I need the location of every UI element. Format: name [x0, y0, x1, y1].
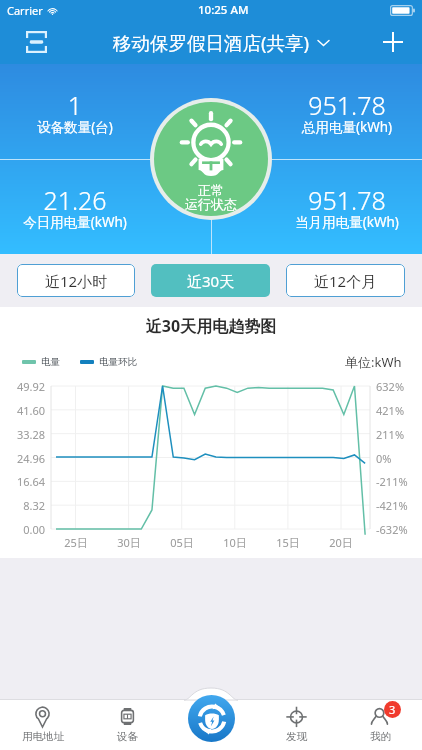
staticText: 30日	[109, 535, 149, 550]
staticText: 近12小时	[45, 271, 108, 291]
staticText: 今日用电量(kWh)	[0, 213, 150, 231]
button[interactable]: 移动保罗假日酒店(共享)	[109, 26, 333, 59]
staticText: 951.78	[272, 183, 422, 217]
staticText: 20日	[321, 535, 361, 550]
staticText: 10:25 AM	[198, 2, 249, 18]
staticText: 当月用电量(kWh)	[272, 213, 422, 231]
staticText: 21.26	[0, 183, 150, 217]
staticText: 49.92	[0, 379, 45, 394]
button[interactable]: Power monitoring	[188, 695, 235, 742]
staticText: 总用电量(kWh)	[272, 118, 422, 136]
button[interactable]: Add	[373, 22, 413, 62]
staticText: 用电地址	[22, 730, 64, 743]
button[interactable]: Scan code	[16, 22, 56, 62]
staticText: 33.28	[0, 427, 45, 442]
staticText: 41.60	[0, 403, 45, 418]
button[interactable]: 发现	[254, 699, 338, 750]
staticText: 电量	[41, 356, 60, 368]
staticText: 15日	[268, 535, 308, 550]
staticText: 我的	[370, 730, 391, 743]
button[interactable]: 近12小时	[17, 264, 135, 297]
staticText: 24.96	[0, 451, 45, 466]
staticText: 运行状态	[154, 196, 268, 212]
staticText: 近12个月	[314, 271, 377, 291]
button[interactable]: 用电地址	[0, 699, 85, 750]
staticText: 设备	[117, 730, 138, 743]
staticText: 设备数量(台)	[0, 118, 150, 136]
staticText: 0.00	[0, 522, 45, 537]
staticText: 211%	[376, 427, 405, 442]
staticText: 10日	[215, 535, 255, 550]
staticText: 05日	[162, 535, 202, 550]
button[interactable]: 设备	[85, 699, 170, 750]
staticText: 632%	[376, 379, 405, 394]
staticText: 16.64	[0, 474, 45, 489]
button[interactable]: 近12个月	[286, 264, 405, 297]
staticText: 移动保罗假日酒店(共享)	[113, 30, 310, 55]
staticText: -632%	[376, 522, 408, 537]
staticText: -421%	[376, 498, 408, 513]
staticText: 单位:kWh	[345, 353, 402, 371]
button[interactable]: 正常	[150, 98, 272, 220]
staticText: 电量环比	[99, 356, 137, 368]
staticText: 发现	[286, 730, 307, 743]
staticText: 25日	[56, 535, 96, 550]
staticText: 近30天	[187, 271, 235, 291]
staticText: 近30天用电趋势图	[0, 315, 422, 337]
staticText: 正常	[154, 182, 268, 198]
staticText: -211%	[376, 474, 408, 489]
button[interactable]: 近30天	[151, 264, 270, 297]
staticText: 951.78	[272, 88, 422, 122]
button[interactable]: 3	[338, 699, 422, 750]
staticText: Carrier	[7, 3, 43, 18]
staticText: 421%	[376, 403, 405, 418]
staticText: 1	[0, 88, 150, 122]
staticText: 3	[389, 702, 396, 717]
staticText: 8.32	[0, 498, 45, 513]
staticText: 0%	[376, 451, 392, 466]
